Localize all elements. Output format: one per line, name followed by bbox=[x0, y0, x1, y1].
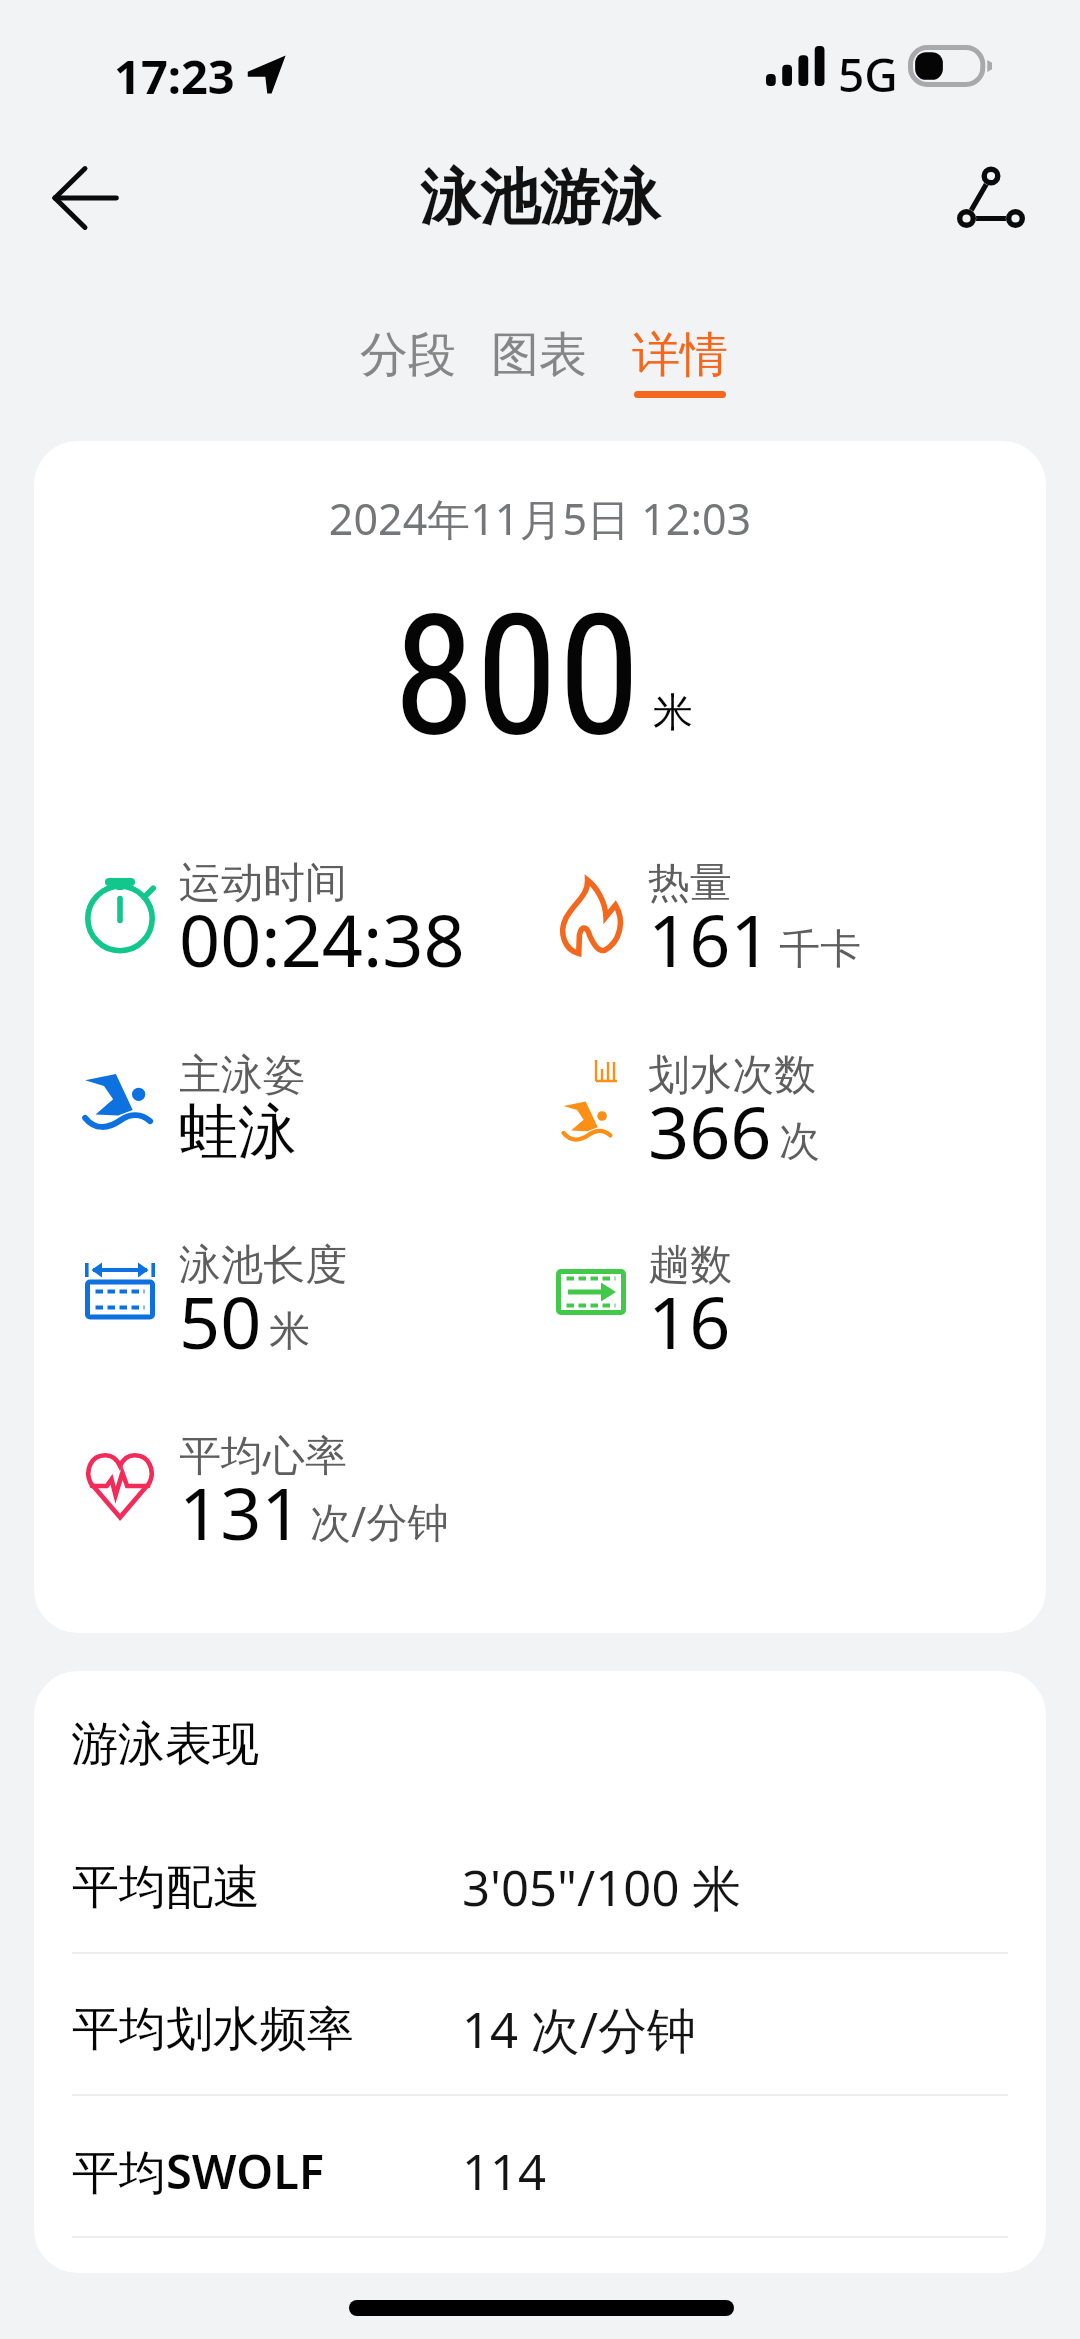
staticText: 114 bbox=[462, 2138, 547, 2205]
staticText: 次/分钟 bbox=[310, 1493, 449, 1549]
staticText: 3'05"/100 米 bbox=[462, 1854, 742, 1921]
staticText: 主泳姿 bbox=[179, 1049, 305, 1102]
staticText: 运动时间 bbox=[179, 857, 347, 910]
staticText: 161 bbox=[648, 890, 772, 988]
staticText: 14 次/分钟 bbox=[462, 1996, 697, 2063]
staticText: 16 bbox=[648, 1272, 731, 1370]
staticText: 131 bbox=[179, 1463, 303, 1561]
button[interactable]: Share route bbox=[941, 147, 1041, 247]
staticText: 蛙泳 bbox=[179, 1095, 297, 1169]
staticText: 2024年11月5日 12:03 bbox=[34, 489, 1046, 548]
button[interactable]: 图表 bbox=[465, 311, 613, 412]
staticText: 366 bbox=[648, 1082, 772, 1180]
button[interactable]: Back bbox=[35, 148, 135, 248]
staticText: 平均配速 bbox=[72, 1858, 260, 1917]
staticText: 详情 bbox=[632, 325, 728, 385]
staticText: 次 bbox=[779, 1116, 820, 1168]
staticText: 图表 bbox=[491, 325, 587, 385]
staticText: 游泳表现 bbox=[71, 1715, 259, 1774]
staticText: 泳池游泳 bbox=[420, 160, 660, 236]
staticText: 17:23 bbox=[114, 44, 235, 108]
staticText: 划水次数 bbox=[648, 1049, 816, 1102]
staticText: 800 bbox=[393, 578, 641, 774]
staticText: 5G bbox=[838, 43, 898, 106]
staticText: 趟数 bbox=[648, 1239, 732, 1292]
button[interactable]: 平均划水频率 bbox=[34, 1969, 1046, 2089]
staticText: 千卡 bbox=[779, 924, 861, 976]
button[interactable]: 详情 bbox=[606, 311, 754, 412]
button[interactable]: 平均SWOLF bbox=[34, 2111, 1046, 2231]
staticText: 米 bbox=[269, 1306, 310, 1358]
staticText: 平均心率 bbox=[179, 1430, 347, 1483]
staticText: 热量 bbox=[648, 857, 732, 910]
staticText: 泳池长度 bbox=[179, 1239, 347, 1292]
staticText: 米 bbox=[653, 687, 693, 737]
staticText: 00:24:38 bbox=[179, 890, 465, 988]
staticText: 平均SWOLF bbox=[72, 2139, 325, 2203]
button[interactable]: 分段 bbox=[334, 311, 482, 412]
staticText: 平均划水频率 bbox=[72, 2000, 354, 2059]
staticText: 50 bbox=[179, 1272, 262, 1370]
button[interactable]: 平均配速 bbox=[34, 1827, 1046, 1947]
staticText: 分段 bbox=[360, 325, 456, 385]
